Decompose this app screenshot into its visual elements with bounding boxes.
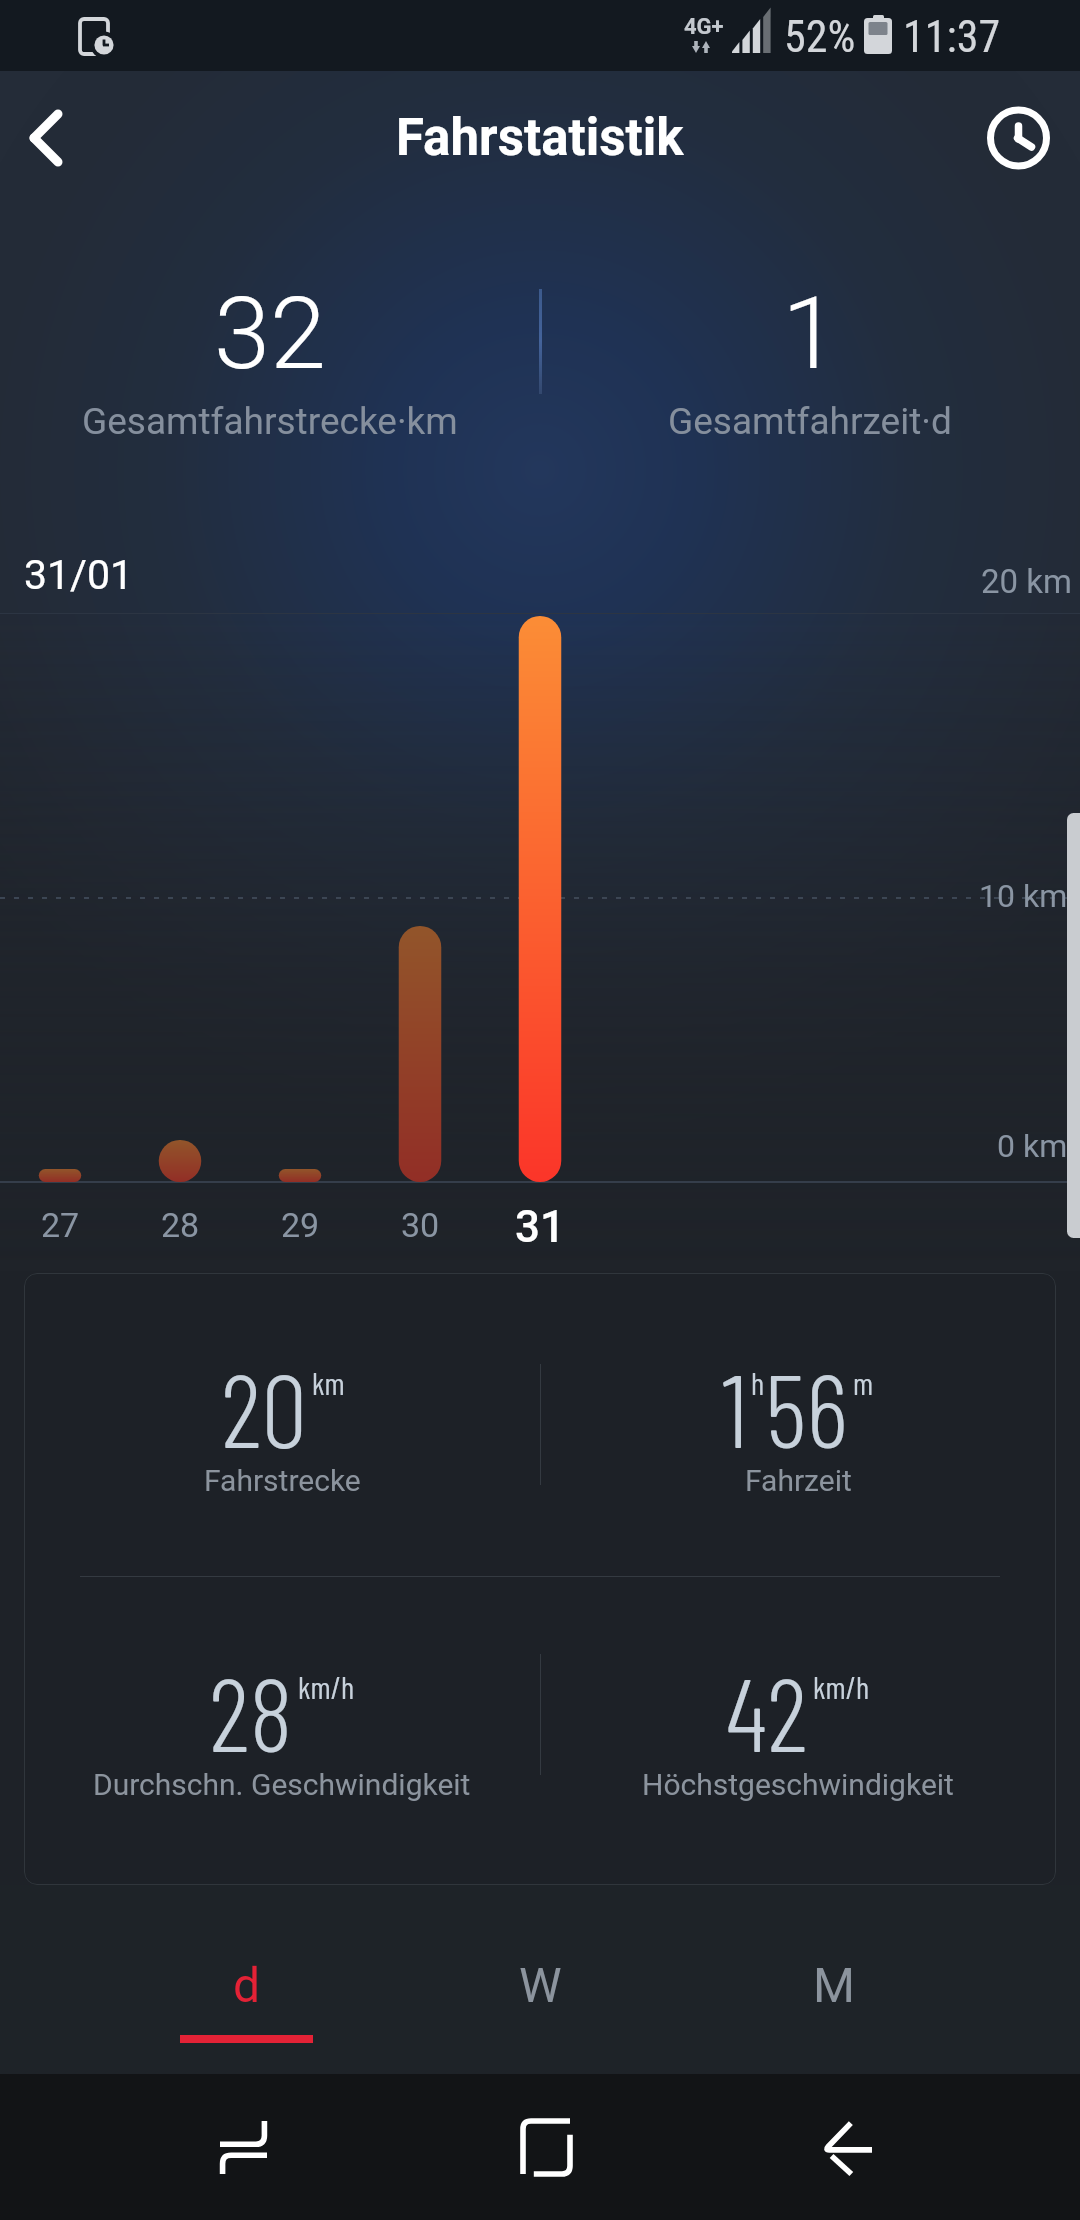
- staticText: W: [519, 1957, 562, 2013]
- staticText: 31/01: [24, 551, 134, 599]
- staticText: Gesamtfahrstrecke·km: [82, 400, 458, 443]
- staticText: h: [751, 1364, 765, 1401]
- staticText: 31: [515, 1201, 566, 1253]
- staticText: km/h: [813, 1668, 870, 1705]
- button[interactable]: M: [734, 1885, 934, 2074]
- staticText: Fahrstrecke: [204, 1463, 361, 1498]
- staticText: 0 km: [997, 1127, 1068, 1165]
- staticText: d: [233, 1957, 261, 2013]
- staticText: 52%: [784, 11, 856, 63]
- button[interactable]: Back: [0, 82, 112, 194]
- staticText: 1: [722, 1345, 748, 1469]
- staticText: 20 km: [981, 562, 1072, 601]
- staticText: 10 km: [979, 877, 1068, 915]
- button[interactable]: Home: [473, 2074, 619, 2220]
- staticText: 29: [281, 1205, 320, 1245]
- staticText: 11:37: [903, 11, 1001, 63]
- staticText: Höchstgeschwindigkeit: [642, 1767, 954, 1802]
- staticText: 30: [401, 1205, 440, 1245]
- button[interactable]: d: [146, 1885, 346, 2074]
- staticText: m: [853, 1364, 874, 1401]
- staticText: km: [312, 1364, 345, 1401]
- staticText: 56: [765, 1345, 848, 1469]
- button[interactable]: Recents: [170, 2074, 316, 2220]
- staticText: Durchschn. Geschwindigkeit: [93, 1767, 471, 1802]
- staticText: Fahrstatistik: [396, 108, 684, 168]
- button[interactable]: Back: [775, 2074, 921, 2220]
- button[interactable]: History: [968, 82, 1080, 194]
- staticText: km/h: [298, 1668, 355, 1705]
- staticText: 1: [782, 274, 839, 392]
- staticText: 28: [209, 1649, 293, 1773]
- staticText: Fahrzeit: [745, 1463, 852, 1498]
- button[interactable]: W: [440, 1885, 640, 2074]
- staticText: Gesamtfahrzeit·d: [668, 400, 952, 443]
- staticText: 42: [726, 1649, 808, 1773]
- staticText: 20: [221, 1345, 307, 1469]
- staticText: 4G+: [684, 14, 724, 40]
- staticText: M: [813, 1957, 855, 2013]
- staticText: 28: [161, 1205, 200, 1245]
- staticText: 27: [41, 1205, 80, 1245]
- staticText: 32: [214, 274, 327, 392]
